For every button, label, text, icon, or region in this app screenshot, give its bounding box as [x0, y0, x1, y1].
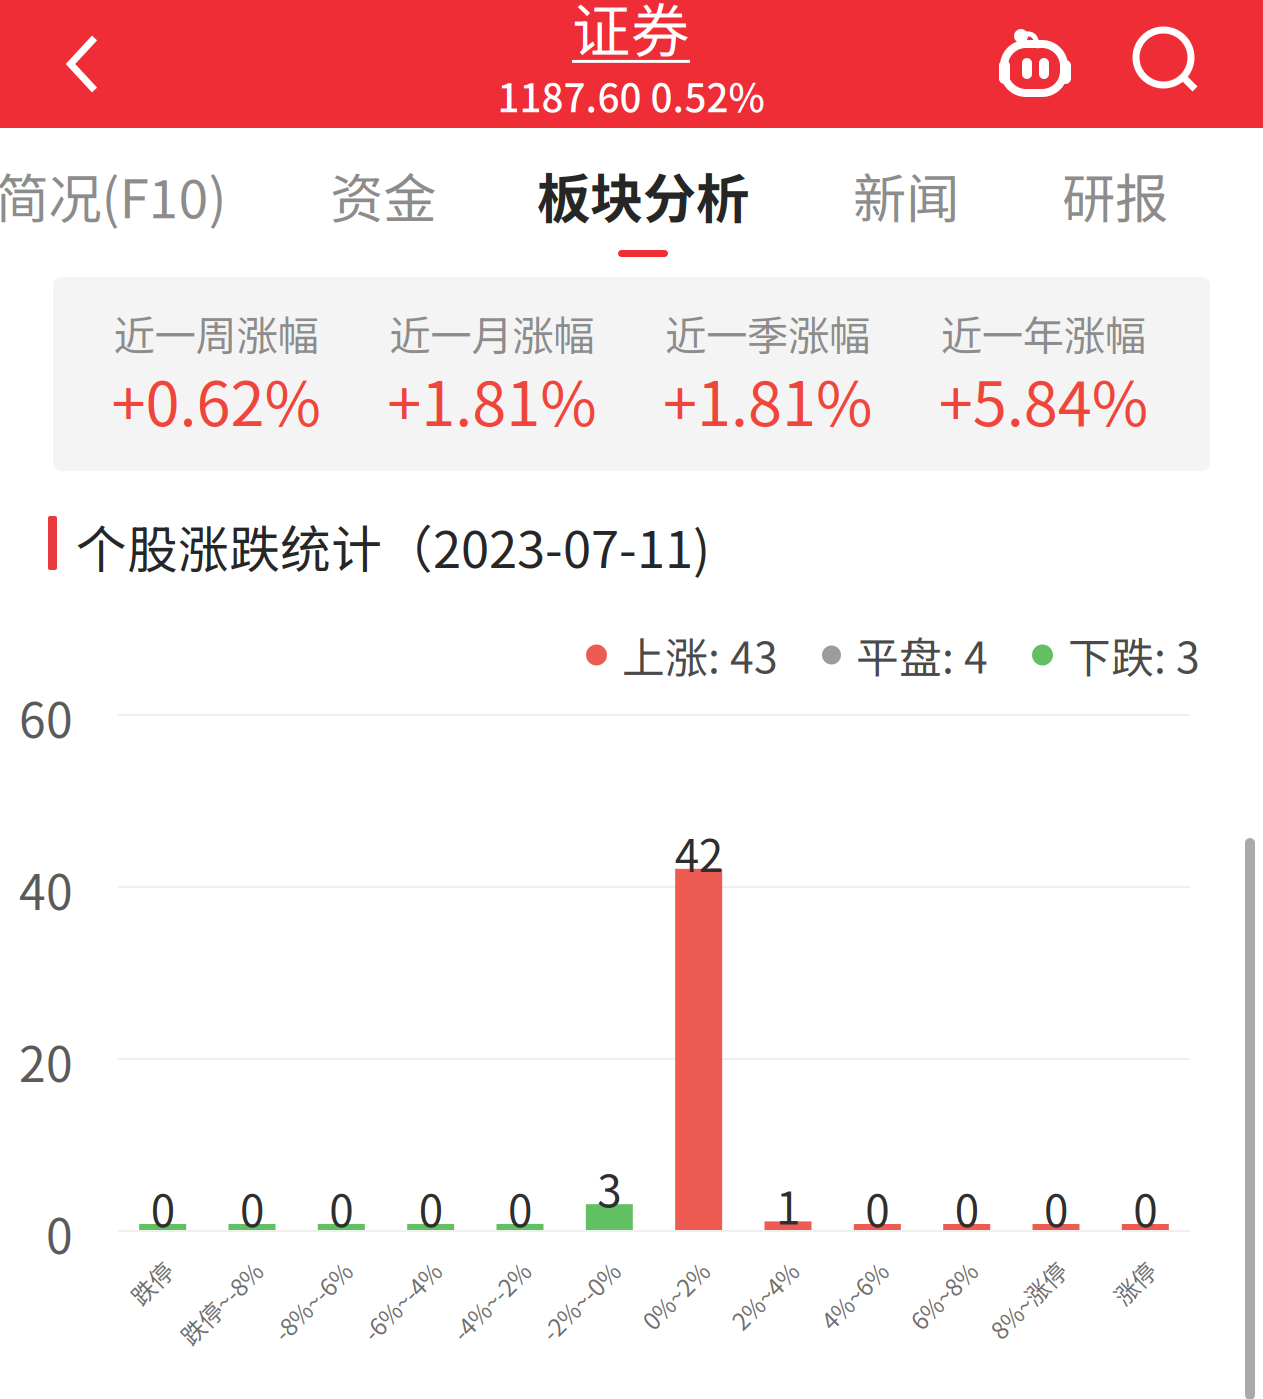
staticText: 板块分析 [537, 156, 749, 234]
staticText: 0 [46, 1198, 73, 1268]
staticText: 42 [675, 821, 723, 885]
staticText: 新闻 [853, 156, 959, 234]
staticText: 研报 [1062, 156, 1168, 234]
staticText: 资金 [330, 156, 436, 234]
staticText: +0.62% [111, 355, 320, 444]
staticText: 3 [597, 1156, 621, 1220]
staticText: 20 [19, 1026, 73, 1096]
staticText: 平盘: 4 [856, 624, 988, 686]
staticText: 0 [955, 1176, 979, 1240]
staticText: 简况(F10) [0, 156, 226, 234]
button[interactable]: 资金 [303, 136, 463, 254]
staticText: 近一季涨幅 [665, 303, 870, 363]
button[interactable]: Back [28, 0, 138, 128]
staticText: +5.84% [939, 355, 1148, 444]
staticText: 1187.60 0.52% [497, 67, 764, 123]
staticText: 个股涨跌统计（2023-07-11) [76, 509, 710, 583]
button[interactable]: AI Assistant [975, 0, 1095, 122]
staticText: 1 [776, 1173, 800, 1237]
button[interactable]: Search [1114, 0, 1224, 126]
button[interactable]: 板块分析 [523, 136, 763, 254]
button[interactable]: 简况(F10) [0, 136, 236, 254]
staticText: 40 [19, 854, 73, 924]
staticText: +1.81% [663, 355, 872, 444]
button[interactable]: 新闻 [826, 136, 986, 254]
button[interactable]: 研报 [1035, 136, 1195, 254]
staticText: 证券 [572, 0, 690, 69]
staticText: 近一月涨幅 [389, 303, 594, 363]
staticText: 0 [151, 1176, 175, 1240]
staticText: 0 [865, 1176, 889, 1240]
staticText: 0 [419, 1176, 443, 1240]
staticText: 0 [329, 1176, 353, 1240]
staticText: 上涨: 43 [622, 624, 778, 686]
staticText: 0 [508, 1176, 532, 1240]
staticText: 0 [240, 1176, 264, 1240]
staticText: +1.81% [387, 355, 596, 444]
staticText: 近一年涨幅 [941, 303, 1146, 363]
staticText: 0 [1133, 1176, 1157, 1240]
staticText: 60 [19, 682, 73, 752]
staticText: 下跌: 3 [1068, 624, 1200, 686]
staticText: 0 [1044, 1176, 1068, 1240]
staticText: 近一周涨幅 [113, 303, 318, 363]
